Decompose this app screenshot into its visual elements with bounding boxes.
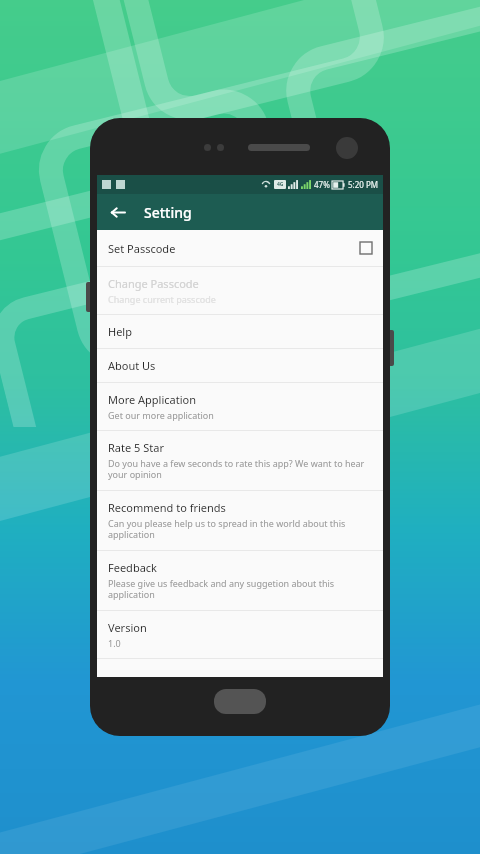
button[interactable]: About Us — [97, 349, 383, 382]
staticText: More Application — [108, 392, 196, 407]
staticText: 5:20 PM — [348, 179, 379, 190]
staticText: Do you have a few seconds to rate this a… — [108, 457, 372, 481]
staticText: About Us — [108, 358, 156, 373]
button[interactable]: More Application — [97, 383, 383, 430]
staticText: 1.0 — [108, 637, 121, 649]
staticText: Change current passcode — [108, 293, 216, 305]
button[interactable]: Back — [101, 196, 133, 228]
button[interactable]: Recommend to friends — [97, 491, 383, 550]
staticText: Setting — [144, 203, 192, 222]
button[interactable]: Help — [97, 315, 383, 348]
button[interactable]: Set Passcode — [97, 230, 383, 266]
staticText: Help — [108, 324, 132, 339]
staticText: Please give us feedback and any suggetio… — [108, 577, 372, 601]
button[interactable]: Version — [97, 611, 383, 658]
staticText: Recommend to friends — [108, 500, 226, 515]
staticText: Set Passcode — [108, 241, 176, 256]
button[interactable]: Rate 5 Star — [97, 431, 383, 490]
staticText: Get our more application — [108, 409, 214, 421]
staticText: Can you please help us to spread in the … — [108, 517, 372, 541]
staticText: Version — [108, 620, 147, 635]
button[interactable]: Feedback — [97, 551, 383, 610]
staticText: 4G — [277, 181, 284, 188]
staticText: Rate 5 Star — [108, 440, 164, 455]
staticText: Feedback — [108, 560, 157, 575]
button[interactable]: Change Passcode — [97, 267, 383, 314]
staticText: 47% — [314, 179, 330, 190]
staticText: Change Passcode — [108, 276, 199, 291]
